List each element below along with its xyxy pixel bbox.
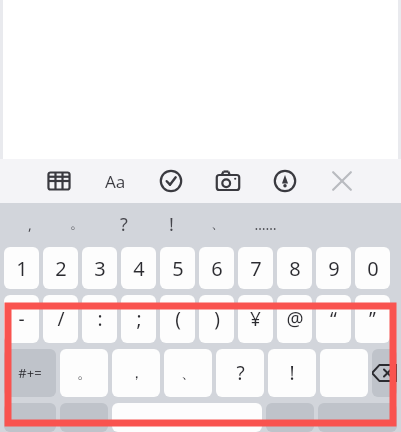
button[interactable]: 3 bbox=[82, 247, 117, 289]
button[interactable]: 5 bbox=[160, 247, 195, 289]
button[interactable] bbox=[112, 403, 262, 432]
button[interactable]: ? bbox=[102, 203, 146, 245]
staticText: 5 bbox=[172, 255, 184, 282]
button[interactable]: “ bbox=[316, 295, 351, 343]
staticText: 3 bbox=[94, 255, 106, 282]
staticText: ¥ bbox=[250, 306, 261, 332]
button[interactable] bbox=[320, 349, 368, 397]
button[interactable]: ， bbox=[112, 349, 160, 397]
staticText: , bbox=[28, 215, 32, 234]
staticText: ” bbox=[369, 306, 376, 332]
button[interactable] bbox=[4, 403, 56, 432]
button[interactable]: #+= bbox=[4, 349, 56, 397]
button[interactable]: 、 bbox=[196, 203, 240, 245]
button[interactable]: Handwriting bbox=[268, 164, 302, 198]
button[interactable]: : bbox=[82, 295, 117, 343]
button[interactable]: 6 bbox=[199, 247, 234, 289]
staticText: ? bbox=[236, 360, 245, 386]
button[interactable]: 0 bbox=[355, 247, 390, 289]
staticText: ? bbox=[120, 212, 128, 237]
staticText: ! bbox=[169, 212, 174, 237]
staticText: 、 bbox=[181, 364, 196, 383]
staticText: : bbox=[97, 306, 103, 332]
button[interactable]: / bbox=[43, 295, 78, 343]
staticText: ， bbox=[129, 364, 144, 383]
button[interactable]: ? bbox=[216, 349, 264, 397]
button[interactable]: …… bbox=[243, 203, 287, 245]
button[interactable]: @ bbox=[277, 295, 312, 343]
button[interactable]: , bbox=[8, 203, 52, 245]
staticText: #+= bbox=[18, 364, 42, 382]
button[interactable]: 4 bbox=[121, 247, 156, 289]
staticText: 。 bbox=[70, 215, 84, 233]
staticText: …… bbox=[254, 215, 277, 234]
staticText: 1 bbox=[16, 255, 28, 282]
staticText: @ bbox=[286, 306, 304, 332]
staticText: 7 bbox=[250, 255, 262, 282]
staticText: 2 bbox=[55, 255, 67, 282]
button[interactable] bbox=[318, 403, 397, 432]
button[interactable]: - bbox=[4, 295, 39, 343]
button[interactable]: 9 bbox=[316, 247, 351, 289]
staticText: 9 bbox=[328, 255, 340, 282]
button[interactable]: ) bbox=[199, 295, 234, 343]
staticText: “ bbox=[330, 306, 337, 332]
staticText: - bbox=[18, 306, 25, 332]
button[interactable] bbox=[60, 403, 108, 432]
staticText: ) bbox=[214, 306, 220, 332]
staticText: 、 bbox=[211, 215, 225, 233]
button[interactable]: 、 bbox=[164, 349, 212, 397]
button[interactable]: Table bbox=[42, 164, 76, 198]
button[interactable]: 。 bbox=[55, 203, 99, 245]
button[interactable]: Backspace bbox=[372, 349, 397, 397]
button[interactable]: Confirm bbox=[154, 164, 188, 198]
button[interactable]: ! bbox=[268, 349, 316, 397]
staticText: 4 bbox=[133, 255, 145, 282]
button[interactable]: ( bbox=[160, 295, 195, 343]
staticText: / bbox=[57, 306, 65, 332]
staticText: 0 bbox=[367, 255, 379, 282]
button[interactable]: 8 bbox=[277, 247, 312, 289]
staticText: 8 bbox=[289, 255, 301, 282]
button[interactable]: ¥ bbox=[238, 295, 273, 343]
button[interactable]: ! bbox=[149, 203, 193, 245]
staticText: ( bbox=[175, 306, 181, 332]
staticText: ! bbox=[289, 360, 295, 386]
button[interactable]: Camera bbox=[211, 164, 245, 198]
button[interactable]: ; bbox=[121, 295, 156, 343]
button[interactable]: 7 bbox=[238, 247, 273, 289]
staticText: 6 bbox=[211, 255, 223, 282]
staticText: ; bbox=[136, 306, 142, 332]
button[interactable]: 2 bbox=[43, 247, 78, 289]
button[interactable]: ” bbox=[355, 295, 390, 343]
button[interactable]: Close keyboard bbox=[325, 164, 359, 198]
staticText: Aa bbox=[105, 170, 126, 193]
staticText: 。 bbox=[77, 364, 92, 383]
button[interactable]: 。 bbox=[60, 349, 108, 397]
button[interactable]: Font size bbox=[98, 164, 132, 198]
button[interactable]: 1 bbox=[4, 247, 39, 289]
button[interactable] bbox=[266, 403, 314, 432]
